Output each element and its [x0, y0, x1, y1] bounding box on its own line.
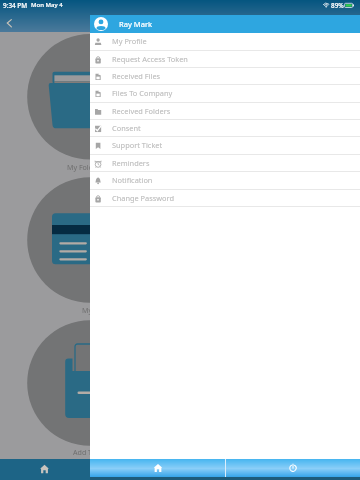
button[interactable]: Received Folders	[90, 103, 360, 120]
staticText: Add To	[73, 447, 96, 457]
button[interactable]: Change Password	[90, 190, 360, 207]
staticText: My Files	[82, 305, 109, 315]
staticText: Received Folders	[112, 106, 171, 116]
button[interactable]: Support Ticket	[90, 137, 360, 154]
staticText: My Folders	[67, 162, 104, 172]
button[interactable]: Reminders	[90, 155, 360, 172]
staticText: Consent	[112, 123, 141, 133]
button[interactable]: Home	[90, 459, 225, 477]
staticText: My Profile	[112, 36, 147, 46]
button[interactable]: Home	[0, 459, 360, 480]
staticText: Received Files	[112, 71, 161, 81]
button[interactable]: Notification	[90, 172, 360, 189]
staticText: Change Password	[112, 193, 175, 203]
button[interactable]: Request Access Token	[90, 51, 360, 68]
staticText: 9:34 PM	[3, 1, 28, 10]
button[interactable]: Ray Mark	[90, 15, 360, 33]
staticText: Mon May 4	[31, 1, 63, 9]
staticText: 89%	[331, 1, 344, 10]
button[interactable]: Received Files	[90, 68, 360, 85]
button[interactable]: Files To Company	[90, 85, 360, 102]
staticText: Support Ticket	[112, 140, 163, 150]
staticText: Request Access Token	[112, 54, 188, 64]
staticText: Notification	[112, 175, 153, 185]
staticText: Reminders	[112, 158, 150, 168]
staticText: Ray Mark	[119, 19, 153, 29]
button[interactable]: Back	[2, 15, 18, 31]
button[interactable]: Consent	[90, 120, 360, 137]
staticText: Files To Company	[112, 88, 173, 98]
button[interactable]: My Profile	[90, 33, 360, 50]
button[interactable]: Power off	[226, 459, 360, 477]
